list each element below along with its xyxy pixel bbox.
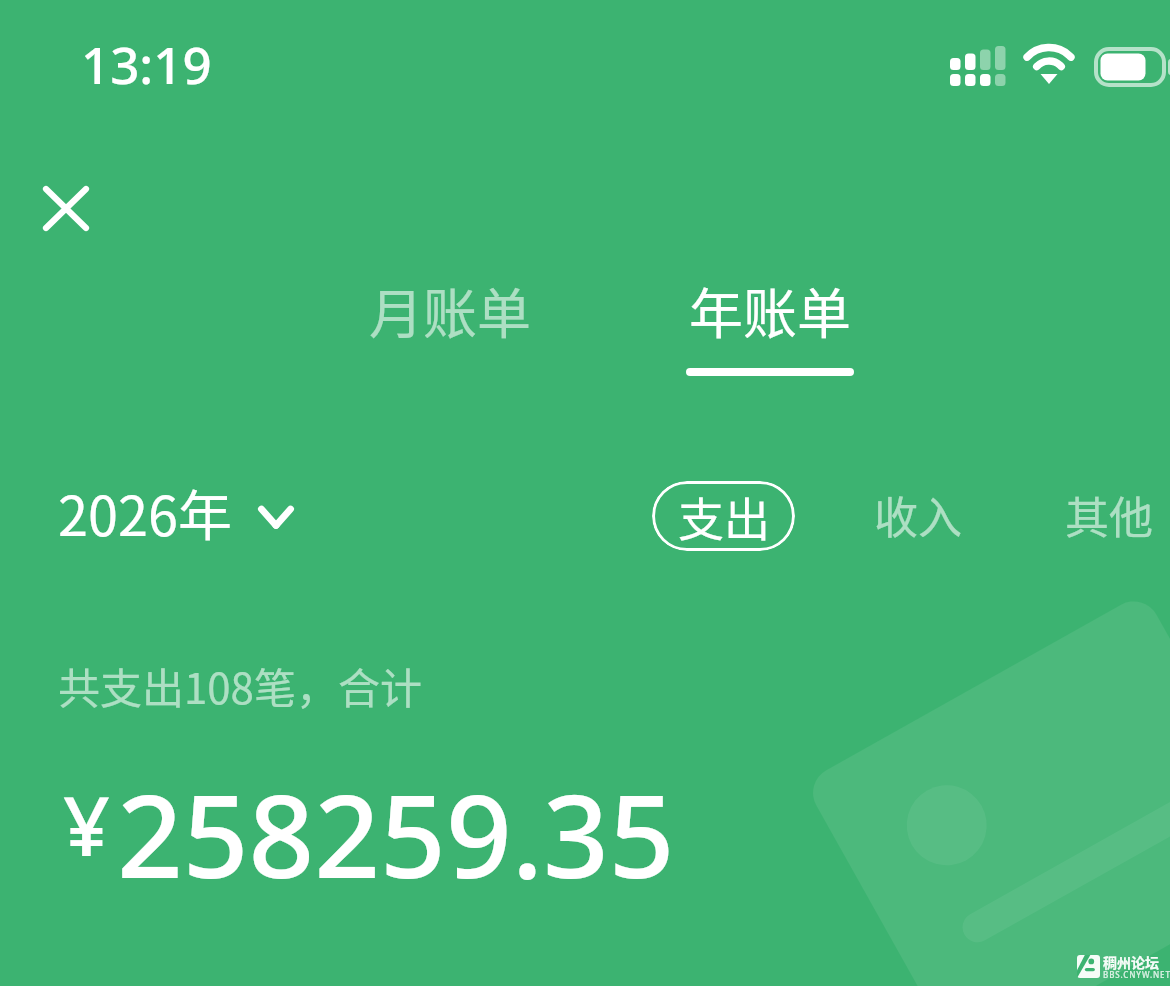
staticText: 其他 <box>1065 483 1153 547</box>
button[interactable]: 其他 <box>1046 481 1169 551</box>
button[interactable]: 月账单 <box>347 263 553 357</box>
staticText: 收入 <box>874 483 962 547</box>
staticText: 月账单 <box>369 271 531 349</box>
staticText: 共支出108笔，合计 <box>58 655 422 716</box>
staticText: 稠州论坛 <box>1103 952 1159 972</box>
staticText: 支出 <box>678 483 770 550</box>
staticText: 2026年 <box>58 473 232 551</box>
button[interactable]: 年账单 <box>664 263 876 384</box>
staticText: 年账单 <box>689 271 851 349</box>
staticText: ¥ <box>63 768 110 880</box>
staticText: BBS.CNYW.NET <box>1103 969 1170 980</box>
staticText: 13:19 <box>81 29 212 98</box>
button[interactable]: 2026年 <box>58 473 298 551</box>
staticText: 258259.35 <box>117 755 675 912</box>
button[interactable]: 收入 <box>855 481 978 551</box>
button[interactable]: Close <box>30 174 104 248</box>
button[interactable]: 支出 <box>652 481 795 551</box>
